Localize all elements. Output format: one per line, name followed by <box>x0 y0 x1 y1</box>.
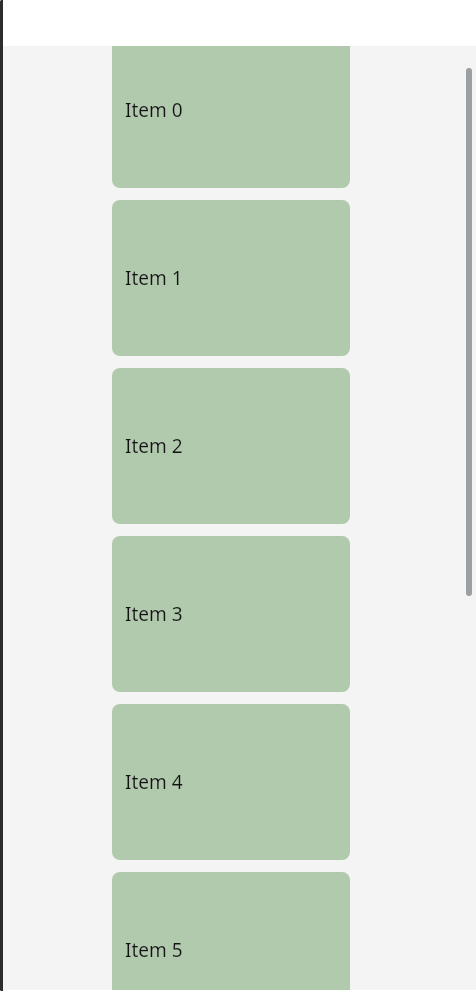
staticText: Item 1 <box>125 265 183 291</box>
button[interactable]: Item 2 <box>112 368 350 524</box>
button[interactable]: Item 3 <box>112 536 350 692</box>
staticText: Item 0 <box>125 97 183 123</box>
button[interactable]: Item 5 <box>112 872 350 990</box>
button[interactable]: Item 1 <box>112 200 350 356</box>
button[interactable]: Item 4 <box>112 704 350 860</box>
staticText: Item 4 <box>125 769 183 795</box>
button[interactable]: Item 0 <box>112 46 350 188</box>
staticText: Item 5 <box>125 937 183 963</box>
staticText: Item 2 <box>125 433 183 459</box>
staticText: Item 3 <box>125 601 183 627</box>
